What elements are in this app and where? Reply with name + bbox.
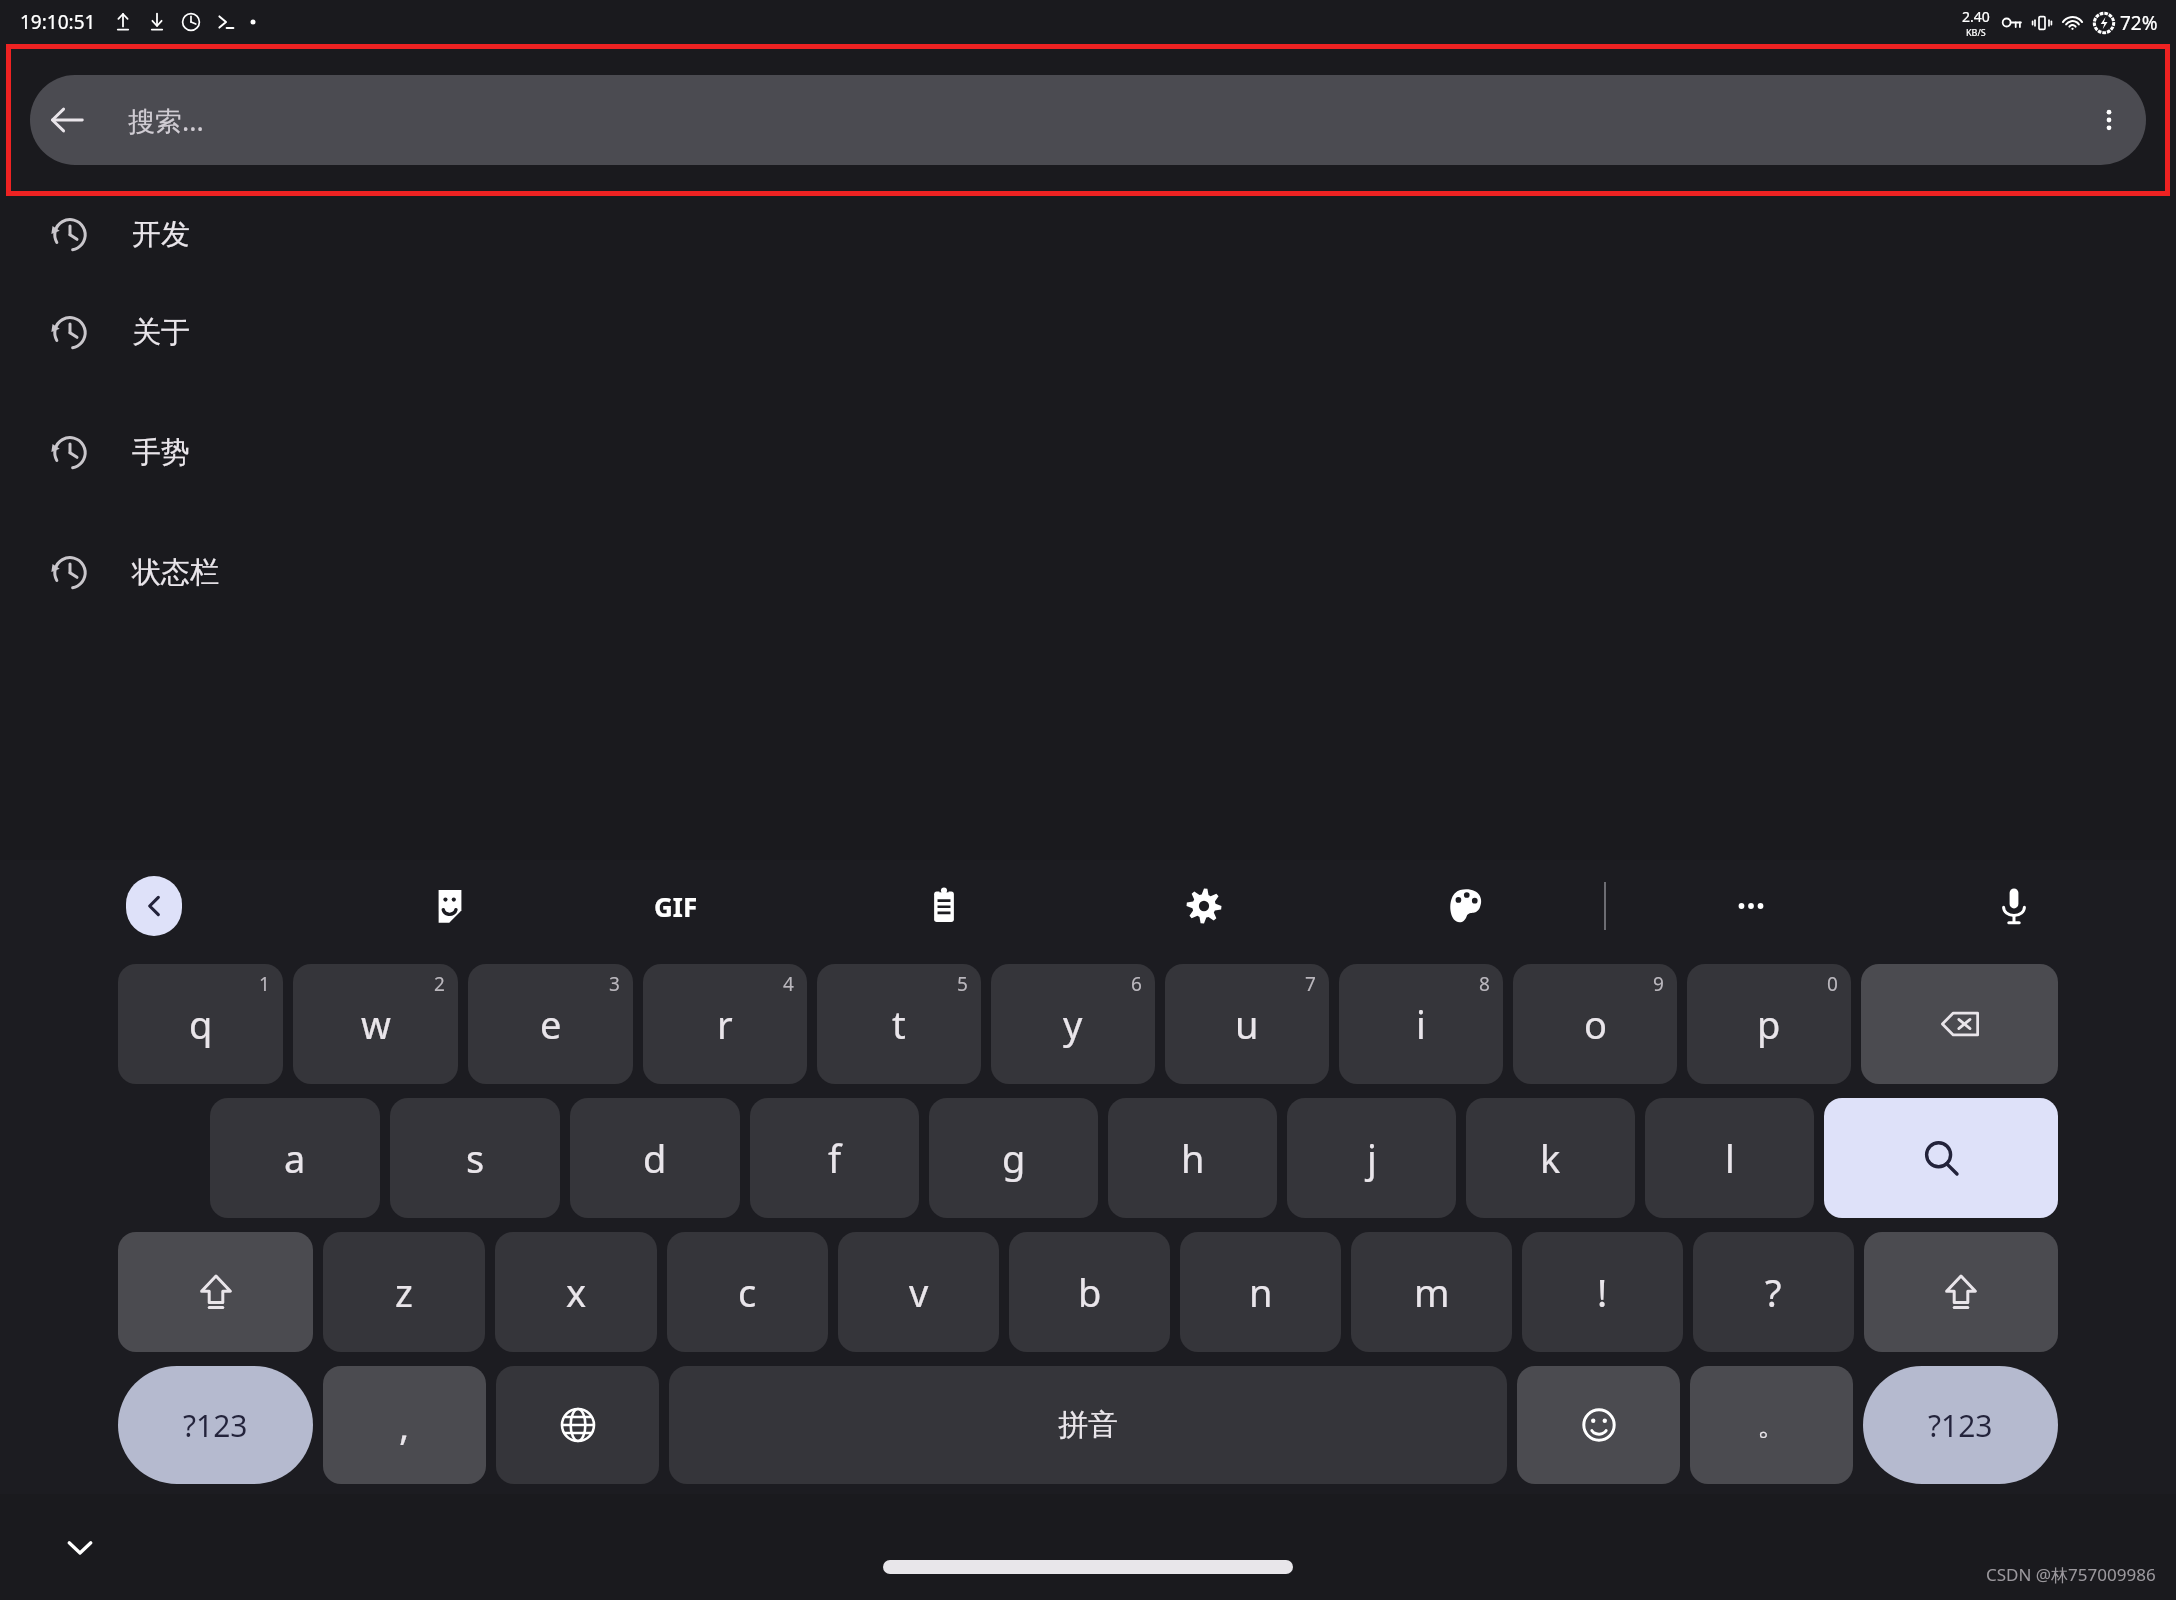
staticText: k [1540,1132,1561,1184]
staticText: ?123 [1928,1405,1993,1446]
button[interactable]: 状态栏 [0,512,2176,632]
staticText: z [395,1266,413,1318]
button[interactable]: u [1165,964,1329,1084]
staticText: s [466,1132,485,1184]
staticText: m [1414,1266,1450,1318]
button[interactable]: e [468,964,633,1084]
staticText: 8 [1479,971,1490,997]
button[interactable]: b [1009,1232,1170,1352]
button[interactable]: Backspace [1861,964,2058,1084]
button[interactable]: s [390,1098,560,1218]
button[interactable]: Switch language [496,1366,659,1484]
staticText: GIF [654,889,698,924]
button[interactable]: w [293,964,458,1084]
staticText: v [909,1266,929,1318]
button[interactable]: p [1687,964,1851,1084]
button[interactable]: n [1180,1232,1341,1352]
staticText: ! [1597,1266,1608,1318]
button[interactable]: v [838,1232,999,1352]
button[interactable]: 。 [1690,1366,1853,1484]
button[interactable]: Hide keyboard [50,1517,110,1577]
staticText: e [540,998,562,1050]
button[interactable]: ? [1693,1232,1854,1352]
button[interactable]: Search [1824,1098,2058,1218]
staticText: 手势 [132,434,190,471]
button[interactable]: j [1287,1098,1456,1218]
staticText: f [828,1132,842,1184]
staticText: o [1584,998,1607,1050]
button[interactable]: Themes [1430,870,1502,942]
button[interactable]: y [991,964,1155,1084]
button[interactable]: Settings [1168,870,1240,942]
button[interactable]: ?123 [118,1366,313,1484]
button[interactable]: g [929,1098,1098,1218]
staticText: 开发 [132,216,190,253]
button[interactable]: Emoji [1517,1366,1680,1484]
staticText: i [1416,998,1426,1050]
staticText: y [1063,998,1083,1050]
staticText: 0 [1827,971,1838,997]
staticText: u [1235,998,1259,1050]
staticText: x [566,1266,587,1318]
staticText: CSDN @林757009986 [1986,1563,2156,1586]
button[interactable]: z [323,1232,485,1352]
staticText: t [892,998,906,1050]
button[interactable]: Collapse toolbar [126,876,182,936]
button[interactable]: Voice input [1978,870,2050,942]
staticText: 19:10:51 [20,9,96,35]
staticText: 拼音 [1058,1406,1118,1444]
staticText: 搜索... [128,102,204,139]
button[interactable]: t [817,964,981,1084]
button[interactable]: , [323,1366,486,1484]
staticText: 5 [957,971,968,997]
button[interactable]: h [1108,1098,1277,1218]
staticText: p [1757,998,1781,1050]
button[interactable]: ! [1522,1232,1683,1352]
button[interactable]: q [118,964,283,1084]
staticText: 关于 [132,314,190,351]
staticText: h [1181,1132,1205,1184]
button[interactable]: Back [30,83,104,157]
staticText: 72% [2120,10,2158,36]
staticText: w [361,998,391,1050]
button[interactable]: i [1339,964,1503,1084]
button[interactable]: l [1645,1098,1814,1218]
button[interactable]: o [1513,964,1677,1084]
button[interactable]: r [643,964,807,1084]
staticText: 1 [259,971,270,997]
staticText: 3 [609,971,620,997]
button[interactable]: x [495,1232,657,1352]
staticText: ? [1765,1266,1782,1318]
button[interactable]: 关于 [0,272,2176,392]
button[interactable]: c [667,1232,828,1352]
button[interactable]: More [1715,870,1787,942]
button[interactable]: ?123 [1863,1366,2058,1484]
staticText: 4 [783,971,794,997]
staticText: 6 [1131,971,1142,997]
button[interactable]: d [570,1098,740,1218]
button[interactable]: Back [30,75,2146,165]
button[interactable]: 拼音 [669,1366,1507,1484]
button[interactable]: Shift [118,1232,313,1352]
button[interactable]: a [210,1098,380,1218]
button[interactable]: Clipboard [908,870,980,942]
button[interactable]: f [750,1098,919,1218]
button[interactable]: k [1466,1098,1635,1218]
staticText: q [189,998,213,1050]
staticText: a [284,1132,306,1184]
staticText: 2 [434,971,445,997]
button[interactable]: Shift [1864,1232,2058,1352]
button[interactable]: More options [2072,83,2146,157]
staticText: , [399,1399,410,1451]
staticText: 。 [1757,1406,1787,1444]
button[interactable]: m [1351,1232,1512,1352]
button[interactable]: 开发 [0,196,2176,272]
staticText: l [1725,1132,1735,1184]
staticText: g [1002,1132,1026,1184]
staticText: c [738,1266,757,1318]
button[interactable]: 手势 [0,392,2176,512]
button[interactable]: GIF [640,870,712,942]
staticText: r [717,998,733,1050]
button[interactable]: Stickers [414,870,486,942]
staticText: d [643,1132,667,1184]
